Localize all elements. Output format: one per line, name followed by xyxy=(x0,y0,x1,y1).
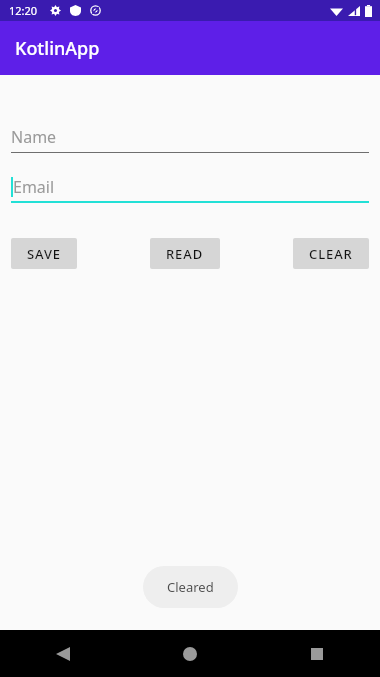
button[interactable]: CLEAR xyxy=(293,238,369,269)
staticText: Cleared xyxy=(167,578,214,596)
button[interactable]: Cleared xyxy=(143,566,238,608)
button[interactable]: Recent apps xyxy=(253,630,380,677)
staticText: Name xyxy=(11,126,57,148)
staticText: Email xyxy=(13,176,55,198)
button[interactable]: READ xyxy=(150,238,220,269)
staticText: 12:20 xyxy=(9,3,38,18)
staticText: SAVE xyxy=(27,245,61,263)
staticText: READ xyxy=(166,245,204,263)
button[interactable]: Back xyxy=(0,630,126,677)
button[interactable]: Email xyxy=(11,171,369,203)
button[interactable]: Name xyxy=(11,121,369,153)
button[interactable]: SAVE xyxy=(11,238,77,269)
staticText: CLEAR xyxy=(309,245,353,263)
staticText: KotlinApp xyxy=(15,36,100,61)
button[interactable]: Home xyxy=(126,630,253,677)
